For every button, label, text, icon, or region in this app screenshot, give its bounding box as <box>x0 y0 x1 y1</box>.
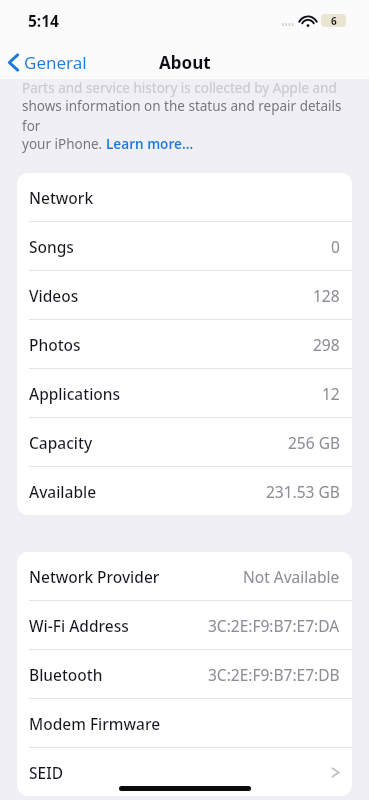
staticText: 231.53 GB <box>266 481 340 502</box>
button[interactable]: Videos <box>17 271 352 319</box>
staticText: 0 <box>331 236 340 257</box>
button[interactable]: Back <box>0 48 95 77</box>
staticText: 5:14 <box>28 10 59 31</box>
button[interactable]: SEID <box>17 748 352 796</box>
staticText: Photos <box>29 334 81 355</box>
staticText: 298 <box>313 334 340 355</box>
staticText: Capacity <box>29 432 93 453</box>
staticText: About <box>159 51 211 74</box>
button[interactable]: Capacity <box>17 418 352 466</box>
button[interactable]: Songs <box>17 222 352 270</box>
other: Back <box>8 53 19 72</box>
staticText: 256 GB <box>288 432 340 453</box>
button[interactable]: Photos <box>17 320 352 368</box>
staticText: 6 <box>331 14 337 27</box>
staticText: General <box>24 51 87 74</box>
staticText: Bluetooth <box>29 664 103 685</box>
button[interactable]: Network <box>17 173 352 221</box>
staticText: Parts and service history is collected b… <box>22 79 337 97</box>
button[interactable]: Modem Firmware <box>17 699 352 747</box>
staticText: Network Provider <box>29 566 160 587</box>
button[interactable]: Learn more... <box>106 135 194 153</box>
staticText: SEID <box>29 762 63 783</box>
button[interactable]: Bluetooth <box>17 650 352 698</box>
staticText: Wi-Fi Address <box>29 615 129 636</box>
staticText: Learn more... <box>106 135 194 153</box>
staticText: Modem Firmware <box>29 713 161 734</box>
staticText: 128 <box>313 285 340 306</box>
staticText: Songs <box>29 236 74 257</box>
staticText: 3C:2E:F9:B7:E7:DA <box>208 615 340 636</box>
staticText: Network <box>29 187 94 208</box>
button[interactable]: Wi-Fi Address <box>17 601 352 649</box>
staticText: shows information on the status and repa… <box>22 97 347 135</box>
button[interactable]: Network Provider <box>17 552 352 600</box>
staticText: Applications <box>29 383 121 404</box>
staticText: Videos <box>29 285 79 306</box>
staticText: 3C:2E:F9:B7:E7:DB <box>208 664 340 685</box>
staticText: your iPhone. <box>22 135 106 153</box>
staticText: Not Available <box>243 566 340 587</box>
staticText: Available <box>29 481 97 502</box>
button[interactable]: Applications <box>17 369 352 417</box>
staticText: 12 <box>322 383 340 404</box>
button[interactable]: Available <box>17 467 352 515</box>
